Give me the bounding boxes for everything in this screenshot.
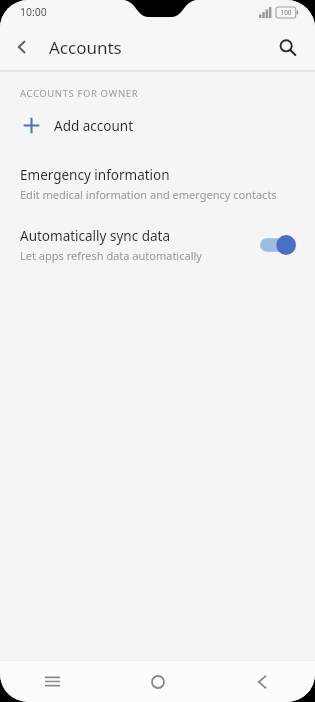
button[interactable]: Back (210, 661, 315, 702)
staticText: ACCOUNTS FOR OWNER (20, 87, 139, 100)
button[interactable]: Recent apps (0, 661, 105, 702)
staticText: Edit medical information and emergency c… (20, 187, 277, 202)
button[interactable]: Emergency information (0, 166, 315, 204)
button[interactable]: Automatically sync data toggle (259, 234, 297, 256)
staticText: Add account (54, 117, 134, 135)
button[interactable]: Home (105, 661, 210, 702)
staticText: 10:00 (20, 5, 47, 19)
staticText: Automatically sync data (20, 227, 170, 245)
staticText: Emergency information (20, 166, 170, 184)
button[interactable]: Search (265, 25, 309, 69)
button[interactable]: Back (0, 25, 44, 69)
button[interactable]: Add account (0, 105, 315, 146)
staticText: Let apps refresh data automatically (20, 248, 202, 263)
button[interactable]: Automatically sync data (0, 227, 315, 263)
staticText: Accounts (49, 36, 122, 59)
staticText: 100 (280, 8, 292, 17)
